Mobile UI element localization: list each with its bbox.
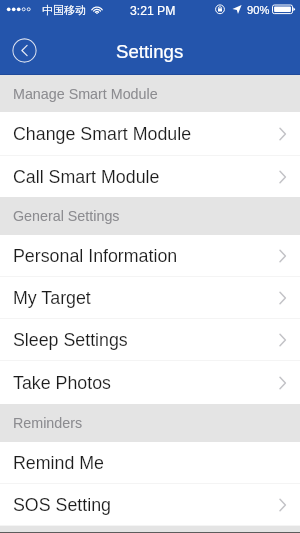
button[interactable]: Change Smart Module	[0, 112, 300, 155]
staticText: Remind Me	[13, 453, 104, 473]
staticText: 中国移动	[42, 3, 86, 17]
button[interactable]: My Target	[0, 277, 300, 318]
button[interactable]: Back	[12, 38, 37, 63]
staticText: Sleep Settings	[13, 330, 128, 350]
button[interactable]: Sleep Settings	[0, 319, 300, 360]
staticText: Settings	[116, 41, 184, 62]
button[interactable]: SOS Setting	[0, 484, 300, 525]
staticText: 3:21 PM	[130, 4, 176, 18]
staticText: 90%	[247, 4, 270, 17]
staticText: My Target	[13, 288, 91, 308]
button[interactable]: Take Photos	[0, 361, 300, 404]
button[interactable]: Personal Information	[0, 235, 300, 276]
staticText: Manage Smart Module	[13, 86, 158, 102]
staticText: SOS Setting	[13, 495, 111, 515]
staticText: Take Photos	[13, 373, 111, 393]
staticText: Reminders	[13, 415, 83, 431]
staticText: Change Smart Module	[13, 124, 192, 144]
staticText: General Settings	[13, 208, 120, 224]
button[interactable]: Call Smart Module	[0, 156, 300, 197]
staticText: Personal Information	[13, 246, 178, 266]
staticText: Call Smart Module	[13, 167, 160, 187]
button[interactable]: Remind Me	[0, 442, 300, 483]
